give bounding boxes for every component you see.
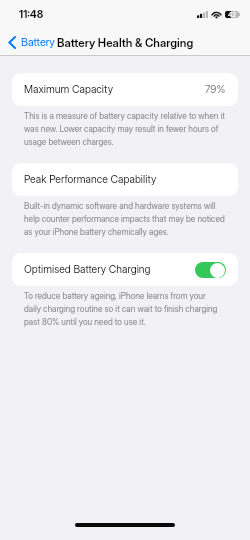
staticText: Optimised Battery Charging (24, 263, 151, 276)
staticText: 79% (205, 83, 226, 96)
staticText: 11:48 (19, 8, 44, 21)
button[interactable]: Peak Performance Capability (12, 163, 238, 196)
other: Wi-Fi (211, 11, 222, 18)
staticText: Maximum Capacity (24, 83, 114, 96)
button[interactable]: Back to Battery (0, 28, 59, 55)
button[interactable]: Optimised Battery Charging (12, 253, 238, 286)
button[interactable]: Optimised Battery Charging toggle (195, 262, 226, 278)
staticText: Battery (21, 35, 55, 48)
staticText: Built-in dynamic software and hardware s… (24, 201, 225, 237)
other: Battery 42 percent (225, 11, 239, 18)
button[interactable]: Maximum Capacity (12, 73, 238, 106)
staticText: To reduce battery ageing, iPhone learns … (24, 291, 218, 327)
staticText: This is a measure of battery capacity re… (24, 111, 225, 147)
staticText: Battery Health & Charging (57, 36, 194, 50)
staticText: Peak Performance Capability (24, 173, 157, 186)
staticText: 42 (228, 11, 236, 18)
other: Cellular signal (197, 11, 208, 18)
